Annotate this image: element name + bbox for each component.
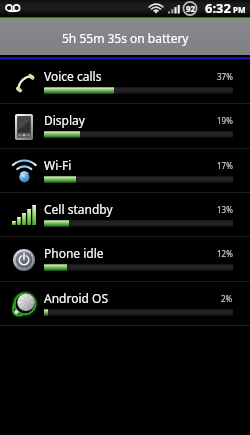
button[interactable]: Phone idle [0,237,250,282]
staticText: Android OS [44,290,108,306]
staticText: 19% [217,115,233,126]
button[interactable]: Cell standby [0,193,250,237]
staticText: 92 [186,3,196,14]
staticText: PM [233,4,246,15]
staticText: Cell standby [44,201,113,217]
staticText: 37% [217,71,233,82]
button[interactable]: Wi-Fi [0,149,250,193]
button[interactable]: Android OS [0,282,250,326]
staticText: Display [44,112,85,128]
button[interactable]: Display [0,104,250,149]
button[interactable]: Voice calls [0,60,250,104]
staticText: Wi-Fi [44,157,72,173]
staticText: Phone idle [44,245,104,261]
staticText: 13% [217,204,233,215]
staticText: 17% [217,160,233,171]
staticText: 2% [221,293,233,304]
staticText: 6:32 [205,0,231,16]
staticText: 12% [217,248,233,259]
staticText: 5h 55m 35s on battery [62,30,189,46]
staticText: Voice calls [44,68,102,84]
